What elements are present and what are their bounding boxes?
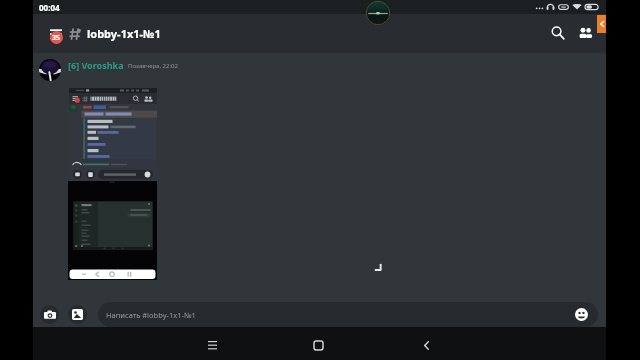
- staticText: Написать #lobby-1x1-№1: [106, 310, 196, 320]
- staticText: [6] Voroshka: [68, 59, 124, 71]
- staticText: 35: [52, 33, 61, 43]
- button[interactable]: Members: [572, 19, 600, 47]
- button[interactable]: Recent apps: [199, 332, 225, 358]
- button[interactable]: Gallery: [68, 305, 87, 324]
- staticText: lobby-1x1-№1: [87, 26, 161, 41]
- button[interactable]: Emoji: [575, 308, 588, 321]
- button[interactable]: Написать #lobby-1x1-№1: [98, 302, 598, 327]
- button[interactable]: Camera: [40, 305, 59, 324]
- button[interactable]: Expand panel: [597, 15, 606, 33]
- button[interactable]: Search: [544, 19, 572, 47]
- button[interactable]: Open channel list: [44, 15, 72, 43]
- button[interactable]: Back: [413, 332, 439, 358]
- staticText: Позавчера, 22:02: [128, 62, 178, 70]
- button[interactable]: Home: [305, 332, 331, 358]
- staticText: 00:04: [39, 2, 60, 13]
